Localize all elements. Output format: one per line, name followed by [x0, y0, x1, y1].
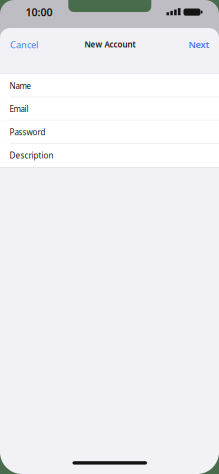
staticText: Description [9, 150, 53, 161]
staticText: New Account [84, 39, 135, 50]
staticText: Email [9, 104, 28, 114]
button[interactable]: Cancel [10, 38, 38, 51]
staticText: Cancel [10, 38, 38, 51]
button[interactable]: Name [0, 74, 219, 97]
button[interactable]: Next [188, 38, 209, 51]
button[interactable]: Description [0, 144, 219, 167]
staticText: 10:00 [25, 5, 52, 19]
staticText: Password [9, 127, 45, 137]
staticText: Next [188, 38, 209, 51]
button[interactable]: Email [0, 97, 219, 121]
staticText: Name [9, 80, 31, 91]
button[interactable]: Password [0, 121, 219, 144]
